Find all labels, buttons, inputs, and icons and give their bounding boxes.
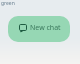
- staticText: New chat: [30, 23, 61, 33]
- staticText: green: [1, 0, 15, 7]
- button[interactable]: New chat: [8, 16, 70, 42]
